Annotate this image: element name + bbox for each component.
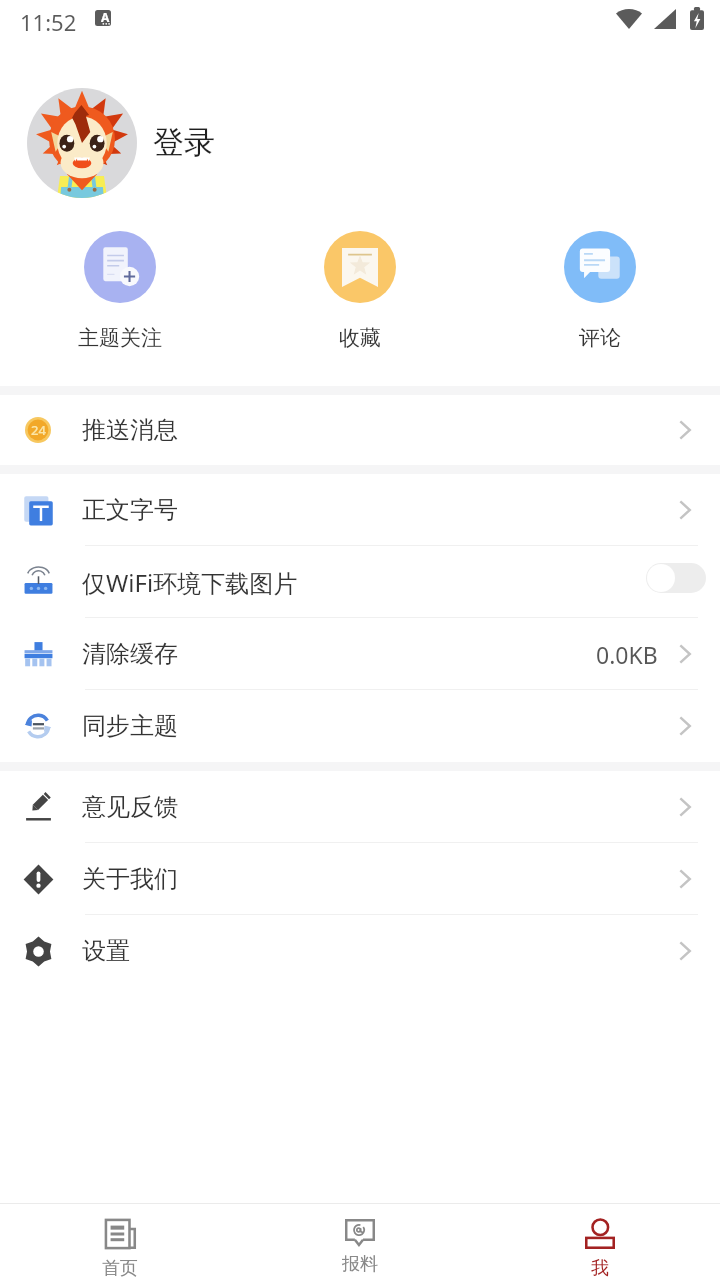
staticText: 设置: [82, 936, 130, 966]
button[interactable]: 清除缓存: [0, 618, 720, 690]
button[interactable]: 首页: [0, 1204, 240, 1280]
button[interactable]: 意见反馈: [0, 771, 720, 843]
button[interactable]: 同步主题: [0, 690, 720, 762]
button[interactable]: 收藏: [240, 198, 480, 386]
button[interactable]: 关于我们: [0, 843, 720, 915]
staticText: 意见反馈: [82, 792, 178, 822]
button[interactable]: 我: [480, 1204, 720, 1280]
button[interactable]: Toggle WiFi only image download: [646, 563, 706, 593]
staticText: 我: [591, 1257, 609, 1280]
button[interactable]: 登录: [0, 87, 720, 198]
staticText: 正文字号: [82, 495, 178, 525]
staticText: A: [101, 9, 110, 25]
button[interactable]: 仅WiFi环境下载图片: [0, 546, 720, 618]
staticText: 登录: [153, 123, 215, 162]
staticText: 关于我们: [82, 864, 178, 894]
button[interactable]: 评论: [480, 198, 720, 386]
staticText: 0.0KB: [596, 639, 658, 670]
button[interactable]: 设置: [0, 915, 720, 987]
staticText: 11:52: [20, 7, 77, 37]
staticText: 报料: [342, 1253, 378, 1276]
staticText: 评论: [579, 325, 621, 351]
button[interactable]: 主题关注: [0, 198, 240, 386]
button[interactable]: 报料: [240, 1204, 480, 1280]
staticText: 收藏: [339, 325, 381, 351]
button[interactable]: 24: [0, 395, 720, 465]
staticText: 清除缓存: [82, 639, 178, 669]
staticText: 24: [31, 421, 46, 439]
staticText: 同步主题: [82, 711, 178, 741]
staticText: 主题关注: [78, 325, 162, 351]
button[interactable]: 正文字号: [0, 474, 720, 546]
staticText: 仅WiFi环境下载图片: [82, 566, 298, 599]
staticText: 推送消息: [82, 415, 178, 445]
staticText: 首页: [102, 1257, 138, 1280]
